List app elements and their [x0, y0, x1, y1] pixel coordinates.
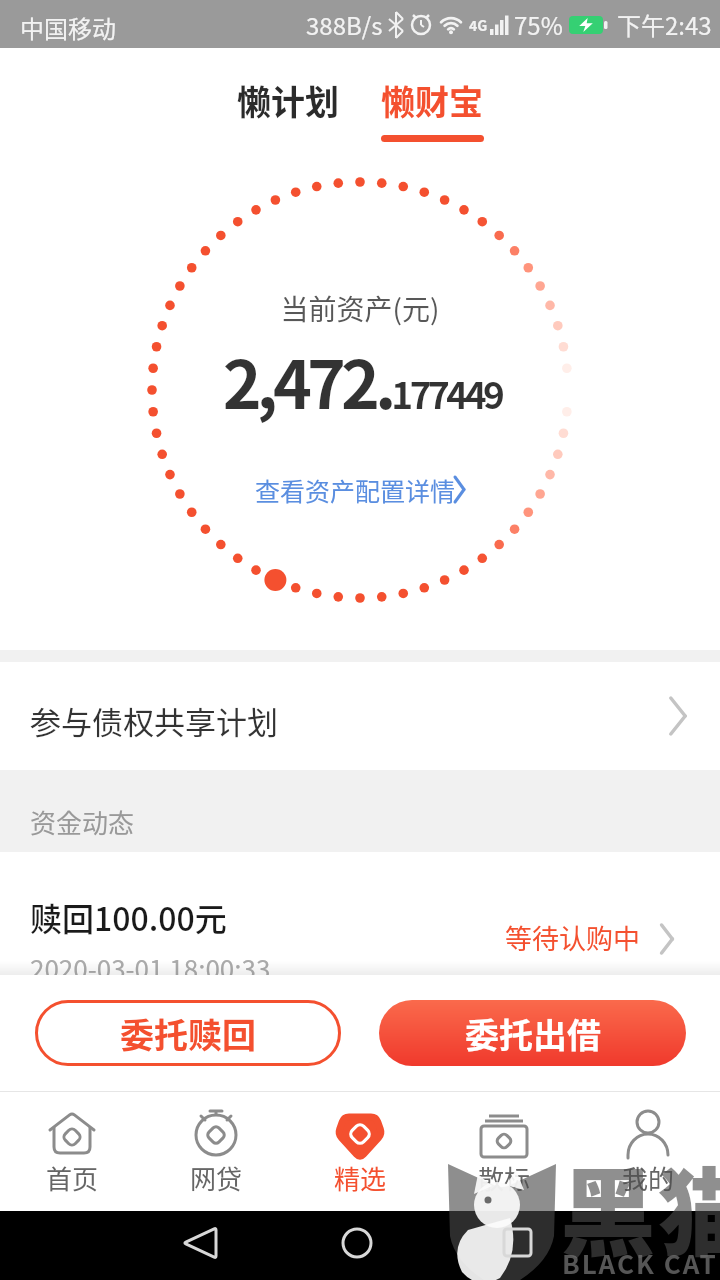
- button[interactable]: 网贷: [144, 1091, 288, 1211]
- staticText: 2,472.177449: [2, 332, 720, 428]
- staticText: 黑猫: [560, 1137, 720, 1276]
- staticText: 75%: [514, 7, 563, 42]
- button[interactable]: 赎回100.00元: [0, 852, 720, 977]
- staticText: 2020-03-01 18:00:33: [30, 949, 271, 987]
- staticText: 委托出借: [465, 1009, 601, 1058]
- staticText: 委托赎回: [120, 1009, 256, 1058]
- button[interactable]: 查看资产配置详情: [245, 462, 475, 512]
- staticText: 赎回100.00元: [30, 894, 227, 940]
- button[interactable]: 委托赎回: [35, 1000, 341, 1066]
- staticText: 当前资产(元): [0, 288, 720, 329]
- button[interactable]: 委托出借: [379, 1000, 686, 1066]
- button[interactable]: 精选: [288, 1091, 432, 1211]
- button[interactable]: 我的: [576, 1091, 720, 1211]
- button[interactable]: 首页: [0, 1091, 144, 1211]
- staticText: 精选: [334, 1159, 387, 1197]
- staticText: 4G: [469, 15, 488, 35]
- button[interactable]: 散标: [432, 1091, 576, 1211]
- staticText: 下午2:43: [617, 7, 712, 42]
- button[interactable]: 懒财宝: [381, 76, 483, 125]
- staticText: 查看资产配置详情: [255, 472, 456, 508]
- staticText: 等待认购中: [505, 918, 640, 957]
- staticText: 网贷: [190, 1159, 243, 1197]
- staticText: 资金动态: [30, 803, 135, 841]
- button[interactable]: 参与债权共享计划: [0, 662, 720, 770]
- staticText: 散标: [478, 1159, 531, 1197]
- staticText: 中国移动: [20, 10, 116, 45]
- staticText: 388B/s: [306, 7, 383, 42]
- staticText: 我的: [622, 1159, 675, 1197]
- staticText: 首页: [46, 1159, 99, 1197]
- button[interactable]: 懒计划: [237, 76, 339, 125]
- staticText: 参与债权共享计划: [30, 698, 278, 743]
- staticText: BLACK CAT: [562, 1244, 718, 1280]
